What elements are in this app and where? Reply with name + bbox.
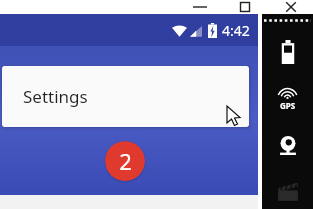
button[interactable]: Close [277, 0, 305, 14]
button[interactable]: Minimize [186, 0, 214, 14]
button[interactable]: Location GPS [262, 80, 313, 118]
staticText: GPS [280, 100, 296, 111]
button[interactable]: Camera [262, 126, 313, 166]
staticText: Settings [23, 85, 88, 108]
button[interactable]: Battery [262, 32, 313, 72]
button[interactable]: 2 [105, 141, 145, 181]
staticText: 4:42 [222, 21, 250, 40]
button[interactable]: Record and playback [262, 174, 313, 209]
button[interactable]: Settings [2, 66, 249, 127]
button[interactable]: Maximize [231, 0, 259, 14]
staticText: 2 [119, 146, 132, 176]
